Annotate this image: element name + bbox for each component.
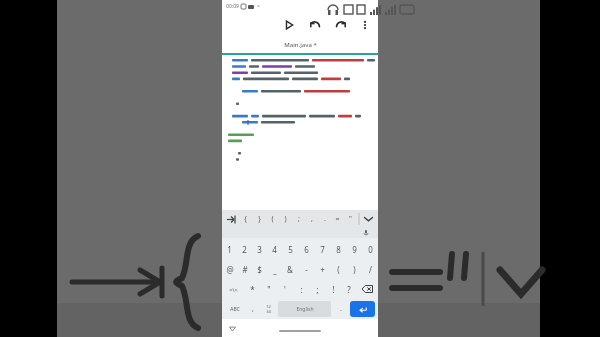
button[interactable]: Run: [282, 18, 296, 32]
staticText: #: [242, 264, 248, 275]
button[interactable]: .: [318, 210, 331, 228]
button[interactable]: =\<: [222, 279, 244, 299]
button[interactable]: 8: [330, 239, 346, 259]
staticText: !: [332, 284, 335, 295]
button[interactable]: $: [252, 259, 267, 279]
staticText: 2: [242, 244, 247, 255]
staticText: -: [305, 264, 308, 275]
staticText: }: [258, 214, 261, 224]
button[interactable]: Tab: [225, 210, 238, 228]
button[interactable]: 0: [362, 239, 378, 259]
staticText: 0: [368, 244, 373, 255]
button[interactable]: =: [331, 210, 344, 228]
button[interactable]: ABC: [224, 301, 246, 317]
button[interactable]: 3: [252, 239, 267, 259]
staticText: 4: [272, 244, 277, 255]
staticText: ): [353, 264, 356, 275]
staticText: ,: [252, 304, 254, 314]
button[interactable]: ): [346, 259, 362, 279]
button[interactable]: Undo: [308, 18, 322, 32]
staticText: 00:09: [226, 3, 239, 10]
staticText: {: [244, 214, 247, 224]
staticText: ': [284, 284, 286, 295]
button[interactable]: Backspace: [357, 279, 378, 299]
button[interactable]: Home: [279, 330, 321, 332]
staticText: &: [287, 264, 293, 275]
staticText: =: [335, 214, 340, 224]
staticText: *: [250, 284, 255, 295]
button[interactable]: #: [237, 259, 252, 279]
button[interactable]: /: [362, 259, 378, 279]
button[interactable]: ?: [341, 279, 357, 299]
staticText: ): [284, 214, 287, 224]
button[interactable]: (: [266, 210, 279, 228]
staticText: ,: [311, 214, 313, 224]
staticText: @: [226, 264, 234, 275]
staticText: ": [349, 214, 352, 224]
button[interactable]: ,: [246, 301, 260, 317]
button[interactable]: 9: [346, 239, 362, 259]
staticText: 3: [257, 244, 262, 255]
staticText: /: [369, 264, 372, 275]
button[interactable]: }: [252, 210, 266, 228]
button[interactable]: -: [298, 259, 314, 279]
staticText: ;: [298, 214, 300, 224]
staticText: ×: [257, 3, 260, 10]
staticText: 1: [227, 244, 232, 255]
staticText: 34: [266, 309, 271, 314]
staticText: 8: [336, 244, 341, 255]
button[interactable]: @: [222, 259, 237, 279]
button[interactable]: ": [261, 279, 277, 299]
button[interactable]: 6: [298, 239, 314, 259]
button[interactable]: Redo: [334, 18, 348, 32]
staticText: ABC: [230, 306, 240, 313]
button[interactable]: English: [278, 301, 331, 317]
button[interactable]: !: [325, 279, 341, 299]
staticText: +: [320, 264, 325, 275]
button[interactable]: .: [333, 301, 349, 317]
staticText: ": [267, 284, 271, 295]
button[interactable]: _: [267, 259, 282, 279]
button[interactable]: ): [279, 210, 292, 228]
button[interactable]: Enter: [350, 301, 375, 317]
button[interactable]: 1: [222, 239, 237, 259]
staticText: ;: [316, 284, 319, 295]
staticText: ?: [347, 284, 351, 295]
button[interactable]: ': [277, 279, 293, 299]
staticText: English: [296, 306, 314, 313]
staticText: Main.java *: [284, 41, 317, 49]
staticText: 6: [304, 244, 309, 255]
button[interactable]: [222, 55, 378, 210]
button[interactable]: {: [238, 210, 252, 228]
staticText: :: [300, 284, 303, 295]
button[interactable]: 4: [267, 239, 282, 259]
button[interactable]: 5: [282, 239, 298, 259]
staticText: (: [271, 214, 274, 224]
staticText: 5: [288, 244, 293, 255]
staticText: $: [257, 264, 262, 275]
staticText: .: [340, 304, 342, 314]
staticText: _: [273, 264, 277, 275]
button[interactable]: +: [314, 259, 330, 279]
button[interactable]: &: [282, 259, 298, 279]
button[interactable]: Hide keyboard: [361, 210, 375, 228]
button[interactable]: (: [330, 259, 346, 279]
button[interactable]: Main.java *: [222, 37, 378, 53]
button[interactable]: 2: [237, 239, 252, 259]
button[interactable]: More options: [358, 18, 372, 32]
button[interactable]: :: [293, 279, 309, 299]
button[interactable]: ;: [309, 279, 325, 299]
button[interactable]: Voice input: [362, 229, 370, 237]
button[interactable]: *: [244, 279, 261, 299]
staticText: =\<: [229, 286, 238, 293]
button[interactable]: ": [344, 210, 357, 228]
staticText: 7: [320, 244, 325, 255]
button[interactable]: 12: [260, 301, 276, 317]
button[interactable]: ,: [305, 210, 318, 228]
staticText: .: [324, 214, 326, 224]
staticText: 9: [352, 244, 357, 255]
staticText: (: [337, 264, 340, 275]
button[interactable]: 7: [314, 239, 330, 259]
button[interactable]: ;: [292, 210, 305, 228]
button[interactable]: Back: [228, 324, 237, 333]
